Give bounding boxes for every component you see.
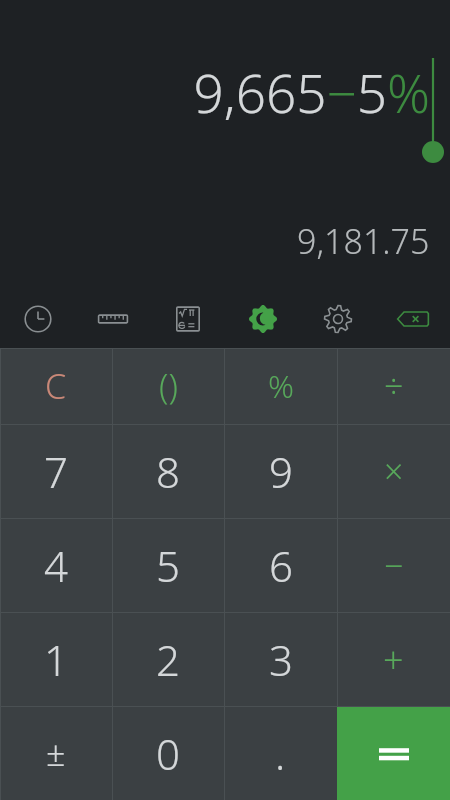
button[interactable]: 9: [224, 424, 337, 518]
button[interactable]: ±: [0, 706, 112, 800]
button[interactable]: 5: [112, 518, 224, 612]
staticText: 9,665−5%: [193, 56, 430, 128]
button[interactable]: %: [224, 348, 337, 424]
staticText: ÷: [384, 363, 404, 409]
button[interactable]: Settings: [300, 294, 375, 344]
staticText: 3: [269, 631, 293, 688]
staticText: ×: [384, 448, 404, 494]
staticText: .: [275, 725, 286, 782]
button[interactable]: 3: [224, 612, 337, 706]
button[interactable]: Backspace: [375, 294, 450, 344]
staticText: 9: [269, 443, 293, 500]
button[interactable]: .: [224, 706, 337, 800]
staticText: 8: [156, 443, 180, 500]
staticText: 2: [156, 631, 180, 688]
button[interactable]: 2: [112, 612, 224, 706]
staticText: ±: [46, 730, 66, 776]
button[interactable]: Theme: [225, 294, 300, 344]
button[interactable]: Constants: [150, 294, 225, 344]
staticText: −: [384, 542, 404, 588]
staticText: C: [45, 363, 67, 409]
button[interactable]: −: [337, 518, 450, 612]
staticText: 6: [269, 537, 293, 594]
button[interactable]: 8: [112, 424, 224, 518]
button[interactable]: 6: [224, 518, 337, 612]
button[interactable]: ×: [337, 424, 450, 518]
button[interactable]: Unit converter: [75, 294, 150, 344]
button[interactable]: (): [112, 348, 224, 424]
staticText: 5: [156, 537, 180, 594]
button[interactable]: 1: [0, 612, 112, 706]
button[interactable]: History: [0, 294, 75, 344]
staticText: +: [383, 635, 404, 684]
staticText: 7: [44, 443, 68, 500]
staticText: 0: [156, 725, 180, 782]
button[interactable]: ÷: [337, 348, 450, 424]
staticText: 1: [44, 631, 68, 688]
staticText: 4: [44, 537, 68, 594]
button[interactable]: 0: [112, 706, 224, 800]
button[interactable]: C: [0, 348, 112, 424]
staticText: 9,181.75: [297, 218, 430, 264]
button[interactable]: Equals: [337, 706, 450, 800]
staticText: (): [159, 363, 178, 409]
button[interactable]: +: [337, 612, 450, 706]
button[interactable]: 4: [0, 518, 112, 612]
button[interactable]: 7: [0, 424, 112, 518]
staticText: %: [268, 364, 294, 408]
